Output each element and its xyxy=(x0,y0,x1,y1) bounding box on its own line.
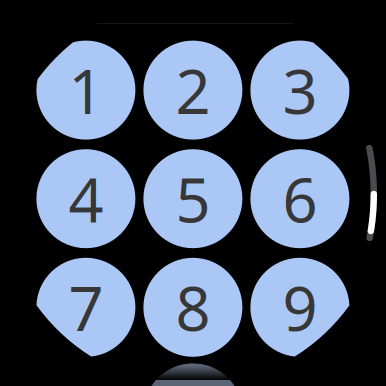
staticText: 8 xyxy=(175,267,210,348)
staticText: 2 xyxy=(175,49,210,131)
staticText: 5 xyxy=(175,158,210,239)
button[interactable]: 9 xyxy=(250,258,349,357)
staticText: 1 xyxy=(68,49,103,131)
staticText: 7 xyxy=(68,267,103,348)
staticText: 6 xyxy=(282,158,317,239)
button[interactable]: 3 xyxy=(250,41,349,140)
button[interactable]: 2 xyxy=(143,41,242,140)
button[interactable]: 1 xyxy=(36,41,135,140)
staticText: 9 xyxy=(282,267,317,348)
button[interactable]: 6 xyxy=(250,149,349,248)
button[interactable]: 7 xyxy=(36,258,135,357)
button[interactable]: 5 xyxy=(143,149,242,248)
staticText: 4 xyxy=(68,158,103,239)
button[interactable]: 8 xyxy=(143,258,242,357)
button[interactable]: 4 xyxy=(36,149,135,248)
staticText: 3 xyxy=(282,49,317,131)
